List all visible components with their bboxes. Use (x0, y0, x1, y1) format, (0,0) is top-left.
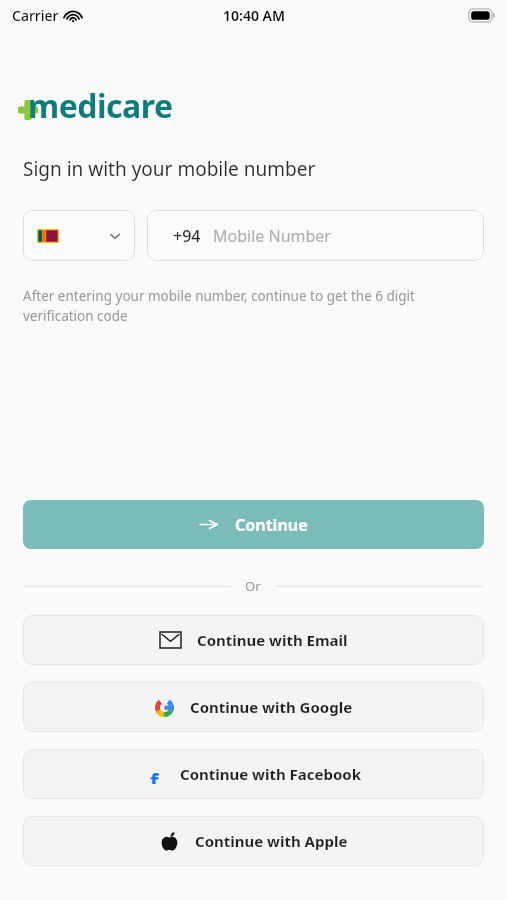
staticText: +94 (173, 225, 201, 247)
button[interactable]: Continue with Apple (23, 816, 484, 866)
staticText: Or (245, 577, 261, 595)
staticText: Sign in with your mobile number (23, 156, 316, 182)
staticText: f (150, 765, 159, 784)
staticText: medicare (28, 84, 173, 120)
button[interactable]: Continue (23, 500, 484, 549)
staticText: Continue with Apple (195, 831, 348, 851)
button[interactable]: Continue with Google (23, 682, 484, 732)
staticText: Continue (235, 514, 308, 536)
button[interactable]: +94 (147, 210, 484, 261)
staticText: 10:40 AM (223, 6, 285, 25)
button[interactable]: Continue with Email (23, 615, 484, 665)
staticText: Mobile Number (213, 225, 331, 247)
staticText: Continue with Email (197, 630, 348, 650)
button[interactable]: f (23, 749, 484, 799)
button[interactable]: Select country (23, 210, 135, 261)
staticText: Carrier (12, 6, 59, 25)
staticText: After entering your mobile number, conti… (23, 287, 484, 325)
staticText: Continue with Google (190, 697, 353, 717)
staticText: Continue with Facebook (180, 764, 362, 784)
